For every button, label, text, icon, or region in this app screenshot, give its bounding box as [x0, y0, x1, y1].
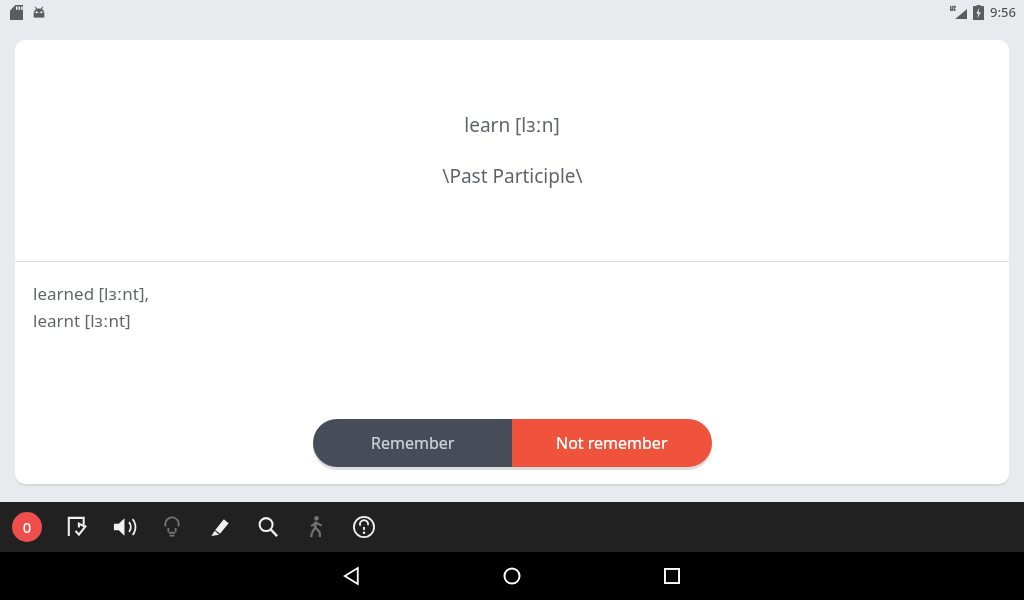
button[interactable]: Mark learned — [60, 511, 92, 543]
button[interactable]: Walk mode — [300, 511, 332, 543]
staticText: 9:56 — [990, 3, 1016, 21]
button[interactable]: Score — [12, 512, 42, 542]
staticText: Not remember — [556, 432, 668, 454]
staticText: \Past Participle\ — [442, 163, 583, 189]
button[interactable]: Recent apps — [592, 552, 752, 600]
button[interactable]: Remember — [313, 419, 512, 467]
button[interactable]: Help — [348, 511, 380, 543]
staticText: learned [lɜːnt], — [33, 282, 150, 305]
staticText: Remember — [371, 432, 455, 454]
button[interactable]: Search — [252, 511, 284, 543]
button[interactable]: Back — [272, 552, 432, 600]
button[interactable]: Home — [432, 552, 592, 600]
button[interactable]: Pronounce — [108, 511, 140, 543]
staticText: 0 — [23, 518, 32, 537]
staticText: learn [lɜːn] — [464, 112, 560, 138]
button[interactable]: Edit — [204, 511, 236, 543]
button[interactable]: Hint — [156, 511, 188, 543]
button[interactable]: Not remember — [512, 419, 712, 467]
staticText: learnt [lɜːnt] — [33, 309, 131, 332]
